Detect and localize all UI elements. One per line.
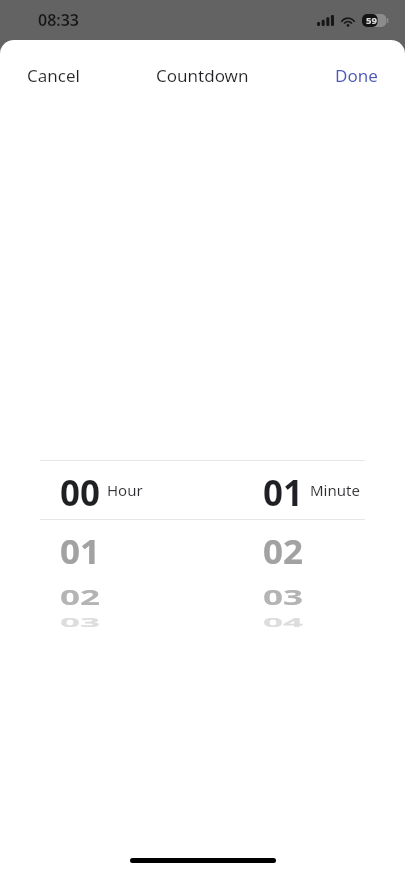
button[interactable]: 01: [0, 528, 202, 570]
button[interactable]: Cancel: [8, 54, 99, 97]
staticText: 00: [59, 469, 100, 511]
staticText: Countdown: [156, 64, 249, 87]
staticText: 01: [262, 469, 303, 511]
other: Cellular signal: [317, 15, 334, 26]
button[interactable]: 00: [0, 469, 202, 511]
staticText: 59: [366, 14, 377, 27]
staticText: Cancel: [27, 64, 80, 87]
other: Battery 59 percent: [362, 14, 389, 27]
staticText: Hour: [107, 480, 143, 500]
button[interactable]: 02: [202, 528, 405, 570]
button[interactable]: 03: [0, 601, 202, 643]
staticText: 03: [262, 582, 303, 608]
button[interactable]: Done: [316, 54, 397, 97]
button[interactable]: 03: [202, 574, 405, 616]
button[interactable]: 04: [202, 601, 405, 643]
staticText: 02: [262, 529, 303, 569]
button[interactable]: 02: [0, 574, 202, 616]
staticText: Minute: [310, 480, 360, 500]
staticText: 03: [59, 615, 100, 629]
other: Wi-Fi: [340, 15, 356, 27]
staticText: 02: [59, 582, 100, 608]
staticText: 08:33: [38, 9, 80, 31]
staticText: 04: [262, 615, 303, 629]
staticText: 01: [59, 529, 100, 569]
staticText: Done: [335, 64, 378, 87]
button[interactable]: 01: [202, 469, 405, 511]
